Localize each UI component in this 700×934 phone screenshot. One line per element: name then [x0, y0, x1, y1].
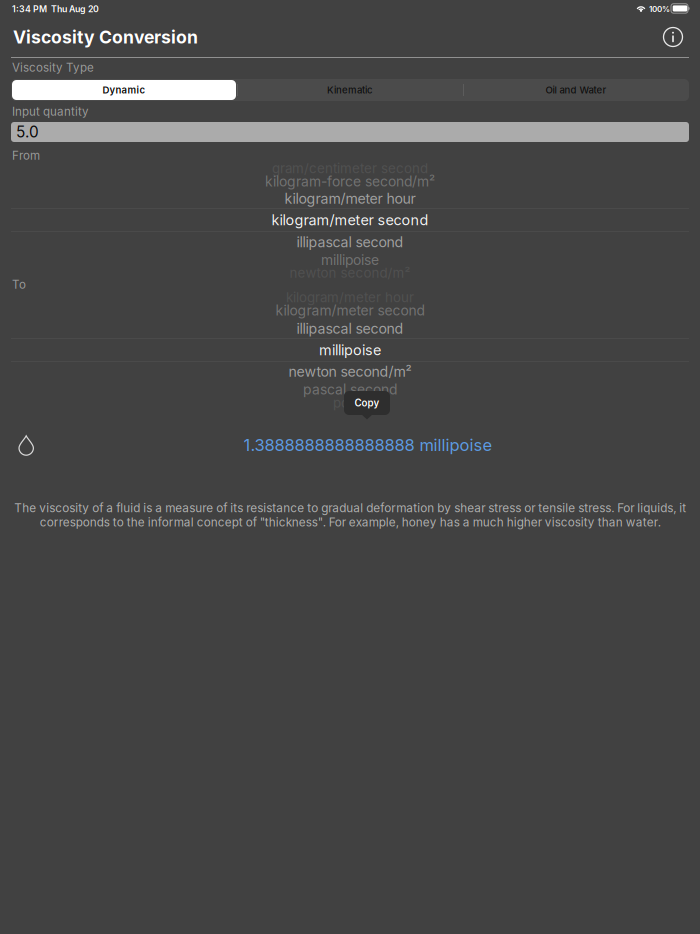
staticText: 5.0 [16, 123, 39, 141]
staticText: Thu Aug 20 [51, 4, 99, 14]
staticText: newton second/m² [288, 363, 411, 380]
staticText: kilogram/meter hour [286, 289, 414, 305]
button[interactable]: 1.3888888888888888 millipoise [243, 435, 492, 455]
staticText: Dynamic [102, 84, 145, 96]
staticText: To [12, 277, 26, 291]
staticText: Kinematic [327, 84, 373, 96]
button[interactable]: Oil and Water [463, 79, 689, 101]
button[interactable]: Copy [344, 391, 390, 420]
staticText: 1:34 PM [12, 4, 47, 14]
staticText: Viscosity Conversion [13, 26, 198, 48]
button[interactable]: Dynamic [12, 80, 236, 100]
staticText: From [12, 148, 40, 162]
staticText: Oil and Water [545, 84, 606, 96]
staticText: 1.3888888888888888 millipoise [243, 435, 492, 455]
staticText: 100% [649, 4, 670, 14]
staticText: kilogram/meter hour [284, 190, 415, 207]
button[interactable]: Info [660, 24, 686, 50]
staticText: kilogram-force second/m² [265, 173, 435, 190]
staticText: illipascal second [296, 320, 403, 337]
staticText: gram/centimeter second [272, 160, 428, 176]
staticText: pascal second [303, 381, 397, 398]
staticText: The viscosity of a fluid is a measure of… [14, 501, 686, 529]
staticText: poise [333, 395, 367, 411]
staticText: kilogram/meter second [271, 211, 428, 229]
staticText: kilogram/meter second [275, 302, 424, 319]
staticText: Input quantity [12, 104, 89, 118]
staticText: millipoise [319, 341, 381, 359]
staticText: Viscosity Type [12, 60, 94, 74]
staticText: illipascal second [296, 233, 403, 250]
staticText: millipoise [321, 252, 379, 268]
button[interactable]: Kinematic [237, 79, 463, 101]
staticText: Copy [354, 397, 379, 409]
staticText: newton second/m² [289, 265, 410, 281]
